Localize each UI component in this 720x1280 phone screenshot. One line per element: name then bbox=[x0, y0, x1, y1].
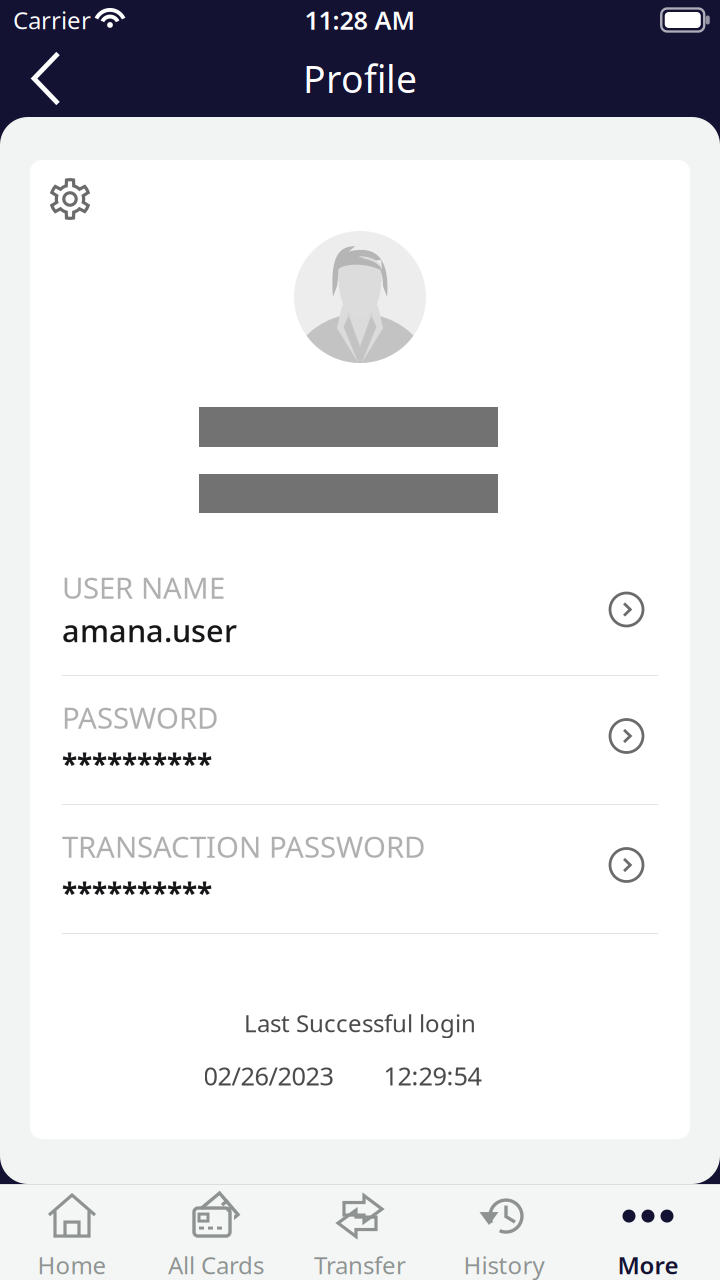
staticText: amana.user bbox=[62, 610, 237, 651]
button[interactable]: All Cards bbox=[144, 1193, 288, 1280]
staticText: Carrier bbox=[13, 4, 91, 36]
button[interactable]: History bbox=[432, 1193, 576, 1280]
button[interactable]: TRANSACTION PASSWORD bbox=[62, 805, 658, 933]
staticText: Home bbox=[37, 1249, 106, 1280]
staticText: USER NAME bbox=[62, 568, 225, 607]
staticText: PASSWORD bbox=[62, 698, 218, 737]
staticText: More bbox=[617, 1249, 678, 1280]
button[interactable]: PASSWORD bbox=[62, 676, 658, 804]
button[interactable]: More bbox=[576, 1193, 720, 1280]
button[interactable]: Back bbox=[0, 42, 84, 114]
staticText: Profile bbox=[303, 54, 417, 103]
staticText: 02/26/2023 bbox=[203, 1059, 333, 1092]
button[interactable]: Settings bbox=[30, 160, 101, 230]
staticText: ********** bbox=[62, 874, 212, 911]
staticText: 12:29:54 bbox=[383, 1059, 481, 1092]
button[interactable]: USER NAME bbox=[62, 557, 658, 675]
staticText: TRANSACTION PASSWORD bbox=[62, 827, 425, 866]
staticText: All Cards bbox=[168, 1249, 264, 1280]
staticText: ********** bbox=[62, 745, 212, 782]
staticText: Transfer bbox=[314, 1249, 406, 1280]
button[interactable]: Transfer bbox=[288, 1193, 432, 1280]
button[interactable]: Home bbox=[0, 1193, 144, 1280]
staticText: 11:28 AM bbox=[304, 3, 415, 37]
staticText: History bbox=[463, 1249, 544, 1280]
staticText: Last Successful login bbox=[244, 1007, 476, 1039]
